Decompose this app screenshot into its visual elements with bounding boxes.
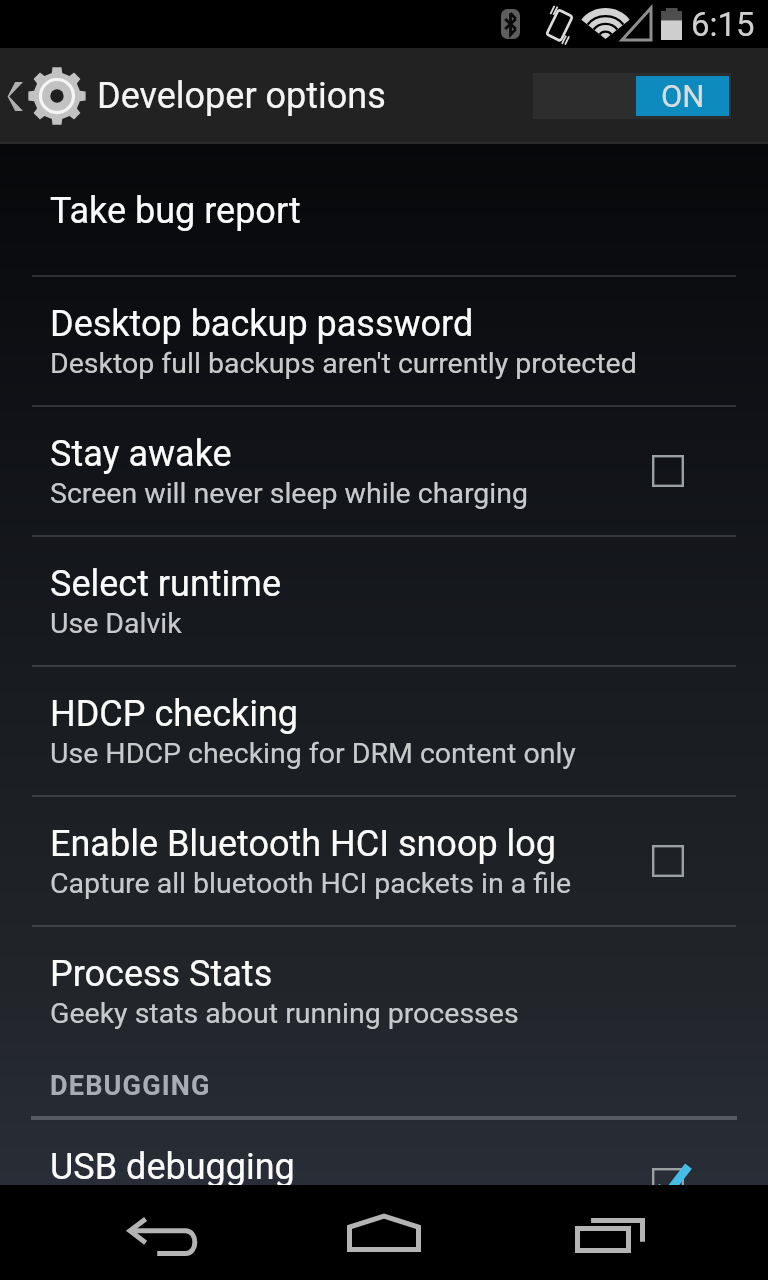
staticText: Desktop backup password [50,303,474,345]
staticText: Select runtime [50,563,281,605]
button[interactable]: HDCP checking [0,667,768,795]
button[interactable]: Navigate up [0,48,390,144]
other: Navigate up [9,82,23,111]
button[interactable]: Desktop backup password [0,277,768,405]
staticText: USB debugging [50,1146,295,1185]
button[interactable]: Home [318,1185,450,1280]
staticText: Process Stats [50,953,273,995]
staticText: 6:15 [691,5,755,44]
staticText: Use Dalvik [50,607,182,640]
button[interactable]: Take bug report [0,147,768,275]
staticText: DEBUGGING [50,1070,211,1102]
staticText: ON [661,78,705,114]
button[interactable]: USB debugging [0,1120,768,1185]
staticText: Screen will never sleep while charging [50,477,528,510]
staticText: Developer options [97,75,386,117]
staticText: Desktop full backups aren't currently pr… [50,347,637,380]
staticText: HDCP checking [50,693,299,735]
button[interactable]: Recent apps [544,1185,676,1280]
staticText: Geeky stats about running processes [50,997,519,1030]
staticText: Capture all bluetooth HCI packets in a f… [50,867,572,900]
staticText: Stay awake [50,433,232,475]
button[interactable]: Process Stats [0,927,768,1055]
button[interactable]: ON [533,73,731,119]
button[interactable]: Stay awake [0,407,768,535]
button[interactable]: Select runtime [0,537,768,665]
staticText: Enable Bluetooth HCI snoop log [50,823,557,865]
staticText: Take bug report [50,190,301,232]
staticText: Use HDCP checking for DRM content only [50,737,576,770]
button[interactable]: Back [98,1185,230,1280]
button[interactable]: Enable Bluetooth HCI snoop log [0,797,768,925]
